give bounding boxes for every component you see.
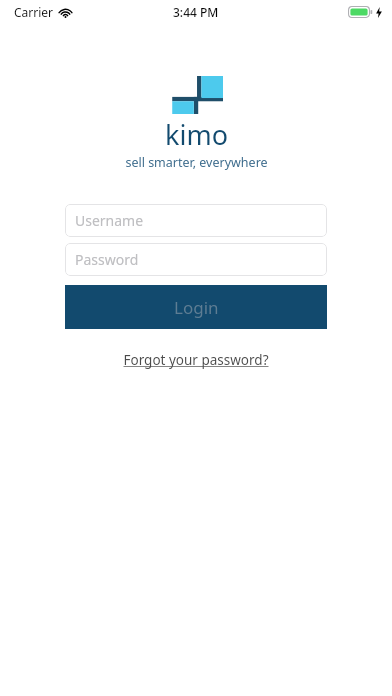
staticText: kimo xyxy=(165,116,228,153)
staticText: sell smarter, everywhere xyxy=(125,154,268,171)
staticText: Carrier xyxy=(14,4,54,20)
button[interactable]: Password xyxy=(65,243,327,276)
button[interactable]: Login xyxy=(65,285,327,329)
button[interactable]: Username xyxy=(65,204,327,237)
button[interactable]: Forgot your password? xyxy=(65,351,327,369)
staticText: Password xyxy=(75,250,139,269)
staticText: Forgot your password? xyxy=(123,351,269,369)
staticText: 3:44 PM xyxy=(173,4,219,20)
staticText: Login xyxy=(174,296,219,319)
staticText: Username xyxy=(75,211,144,230)
